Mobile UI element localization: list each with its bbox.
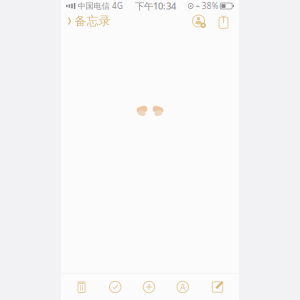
staticText: 备忘录 bbox=[74, 14, 110, 28]
button[interactable]: Add Attachment bbox=[138, 276, 159, 297]
button[interactable]: Markup bbox=[172, 276, 193, 297]
staticText: A bbox=[180, 281, 186, 293]
button[interactable]: Checklist bbox=[105, 276, 126, 297]
staticText: 4G bbox=[112, 1, 123, 11]
staticText: ⌁ bbox=[195, 1, 200, 11]
button[interactable]: New Note bbox=[206, 276, 229, 297]
button[interactable]: Add People bbox=[189, 12, 208, 29]
button[interactable]: Share bbox=[214, 12, 233, 30]
staticText: 中国电信 bbox=[77, 1, 109, 11]
button[interactable]: 备忘录 bbox=[67, 11, 116, 31]
staticText: 下午10:34 bbox=[135, 0, 176, 12]
button[interactable]: Delete bbox=[71, 276, 92, 297]
staticText: 38% bbox=[202, 1, 219, 11]
